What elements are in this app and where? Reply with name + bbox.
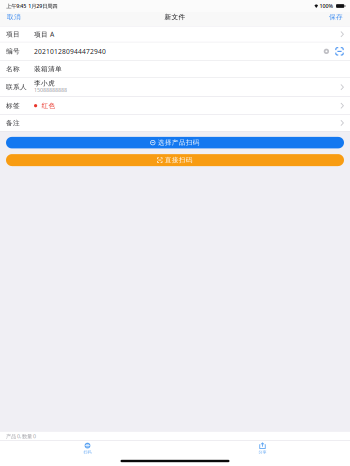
- button[interactable]: 保存: [322, 12, 350, 22]
- staticText: 100%: [319, 2, 333, 10]
- button[interactable]: 清除: [323, 48, 330, 54]
- button[interactable]: 扫码: [330, 47, 344, 56]
- button[interactable]: 标签: [0, 97, 350, 114]
- staticText: 项目: [6, 30, 20, 38]
- staticText: 李小虎: [34, 79, 55, 87]
- button[interactable]: 扫码: [0, 441, 175, 455]
- button[interactable]: 选择产品扫码: [6, 137, 344, 148]
- staticText: 备注: [6, 119, 20, 127]
- staticText: 202101280944472940: [34, 47, 106, 56]
- staticText: 分享: [258, 450, 266, 455]
- button[interactable]: 项目: [0, 26, 350, 42]
- staticText: 直接扫码: [165, 156, 193, 164]
- button[interactable]: 备注: [0, 115, 350, 131]
- staticText: 名称: [6, 65, 20, 73]
- staticText: 红色: [41, 102, 55, 110]
- button[interactable]: 直接扫码: [6, 154, 344, 166]
- button[interactable]: 取消: [0, 12, 28, 22]
- staticText: 产品 0, 数量 0: [6, 433, 36, 440]
- button[interactable]: 联系人: [0, 78, 350, 96]
- staticText: 15088888888: [34, 86, 67, 94]
- staticText: 编号: [6, 47, 20, 55]
- staticText: 取消: [7, 13, 21, 21]
- staticText: 装箱清单: [34, 65, 62, 73]
- button[interactable]: 分享: [175, 441, 350, 455]
- staticText: 标签: [6, 102, 20, 110]
- staticText: 新文件: [164, 13, 185, 21]
- staticText: 联系人: [6, 83, 27, 91]
- staticText: 选择产品扫码: [158, 139, 200, 147]
- staticText: 扫码: [83, 450, 91, 455]
- staticText: 项目 A: [34, 30, 54, 39]
- staticText: 保存: [329, 13, 343, 21]
- staticText: 上午9:45 1月29日周四: [6, 2, 57, 10]
